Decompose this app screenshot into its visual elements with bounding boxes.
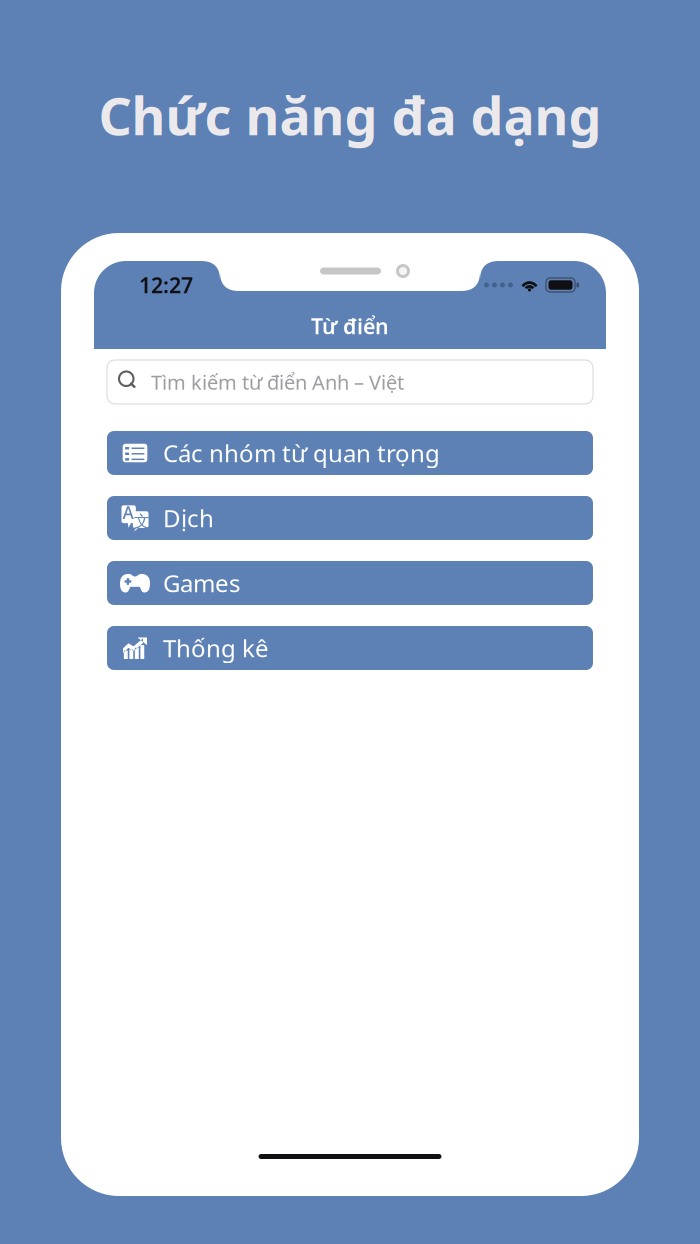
staticText: Tìm kiếm từ điển Anh – Việt [151, 369, 404, 395]
button[interactable]: Games [107, 561, 593, 605]
staticText: Các nhóm từ quan trọng [163, 437, 440, 469]
staticText: A [122, 501, 133, 524]
button[interactable]: A [107, 496, 593, 540]
staticText: 文 [134, 512, 150, 531]
button[interactable]: Tìm kiếm từ điển Anh – Việt [107, 360, 593, 404]
staticText: Dịch [163, 502, 214, 534]
staticText: Games [163, 567, 240, 599]
staticText: Từ điển [311, 312, 389, 340]
button[interactable]: Các nhóm từ quan trọng [107, 431, 593, 475]
staticText: Chức năng đa dạng [98, 80, 601, 150]
button[interactable]: Thống kê [107, 626, 593, 670]
staticText: Thống kê [163, 632, 269, 664]
staticText: 12:27 [139, 271, 193, 299]
